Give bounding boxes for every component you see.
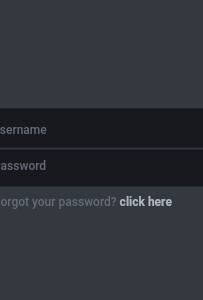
button[interactable]: Forgot your password? click here xyxy=(0,190,203,214)
staticText: Forgot your password? click here xyxy=(0,195,172,209)
staticText: Password xyxy=(0,159,47,173)
button[interactable]: Username xyxy=(0,109,203,147)
button[interactable]: Password xyxy=(0,147,203,186)
staticText: Username xyxy=(0,123,47,137)
